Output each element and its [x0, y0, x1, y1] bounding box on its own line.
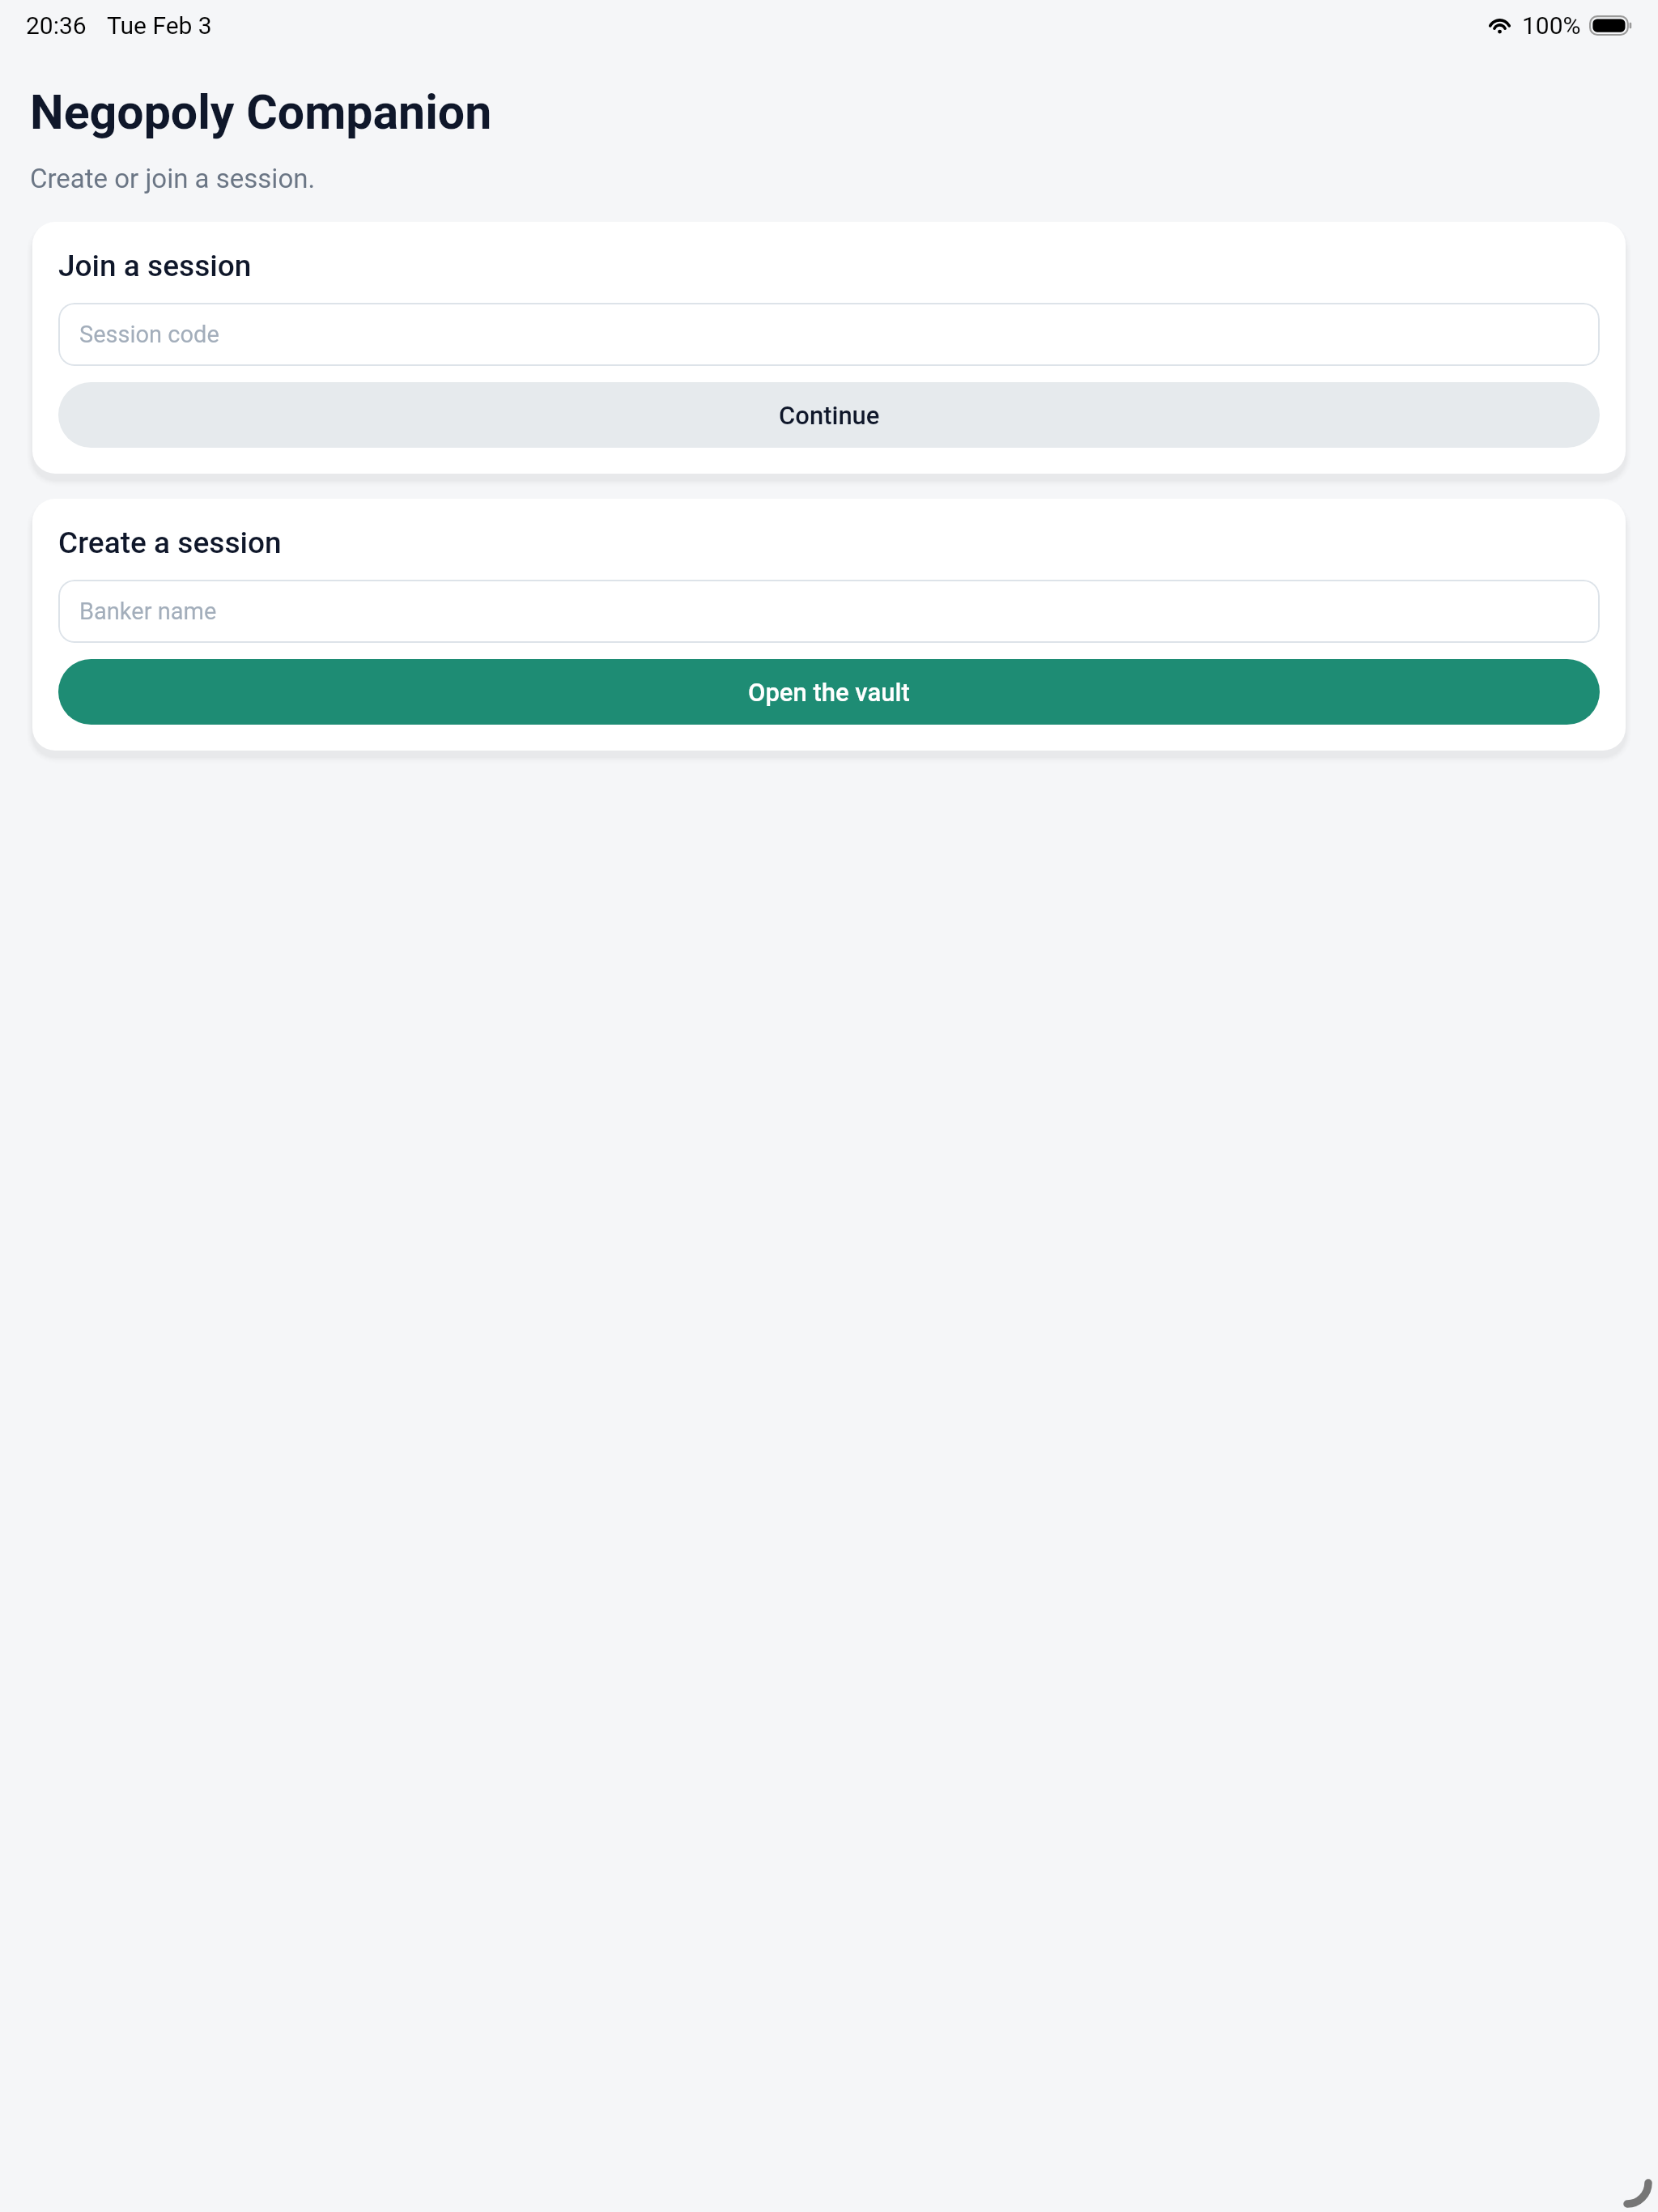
- other: Wi-Fi connected: [1487, 17, 1512, 34]
- staticText: Create or join a session.: [30, 163, 316, 194]
- staticText: Open the vault: [748, 678, 910, 707]
- button[interactable]: Banker name: [58, 580, 1600, 643]
- staticText: Negopoly Companion: [30, 84, 492, 140]
- staticText: 20:36: [26, 11, 87, 40]
- staticText: 100%: [1522, 11, 1581, 40]
- staticText: Session code: [79, 321, 219, 348]
- staticText: Continue: [779, 401, 880, 430]
- button[interactable]: Session code: [58, 303, 1600, 366]
- staticText: Tue Feb 3: [107, 11, 212, 40]
- staticText: Join a session: [58, 249, 252, 283]
- staticText: Banker name: [79, 598, 217, 625]
- other: Battery 100 percent: [1589, 15, 1633, 36]
- button[interactable]: Continue: [58, 382, 1600, 448]
- button[interactable]: Open the vault: [58, 659, 1600, 725]
- staticText: Create a session: [58, 525, 282, 560]
